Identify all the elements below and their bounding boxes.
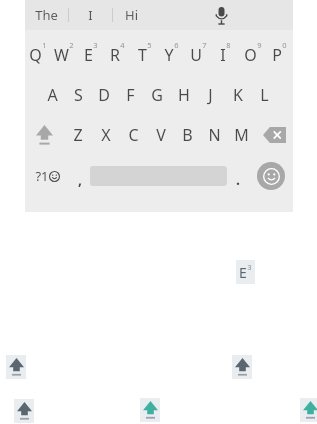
staticText: 9 xyxy=(257,40,262,50)
staticText: T xyxy=(138,44,147,66)
staticText: S xyxy=(74,84,83,106)
staticText: Q xyxy=(29,44,42,66)
staticText: B xyxy=(182,124,193,146)
staticText: Hi xyxy=(125,6,138,24)
button[interactable]: Shift xyxy=(300,398,317,422)
staticText: F xyxy=(126,84,135,106)
staticText: , xyxy=(78,170,82,189)
staticText: C xyxy=(128,124,139,146)
button[interactable]: Q xyxy=(25,36,51,74)
button[interactable]: Shift xyxy=(14,399,34,423)
button[interactable]: L xyxy=(251,76,278,114)
button[interactable]: S xyxy=(65,76,91,114)
staticText: 3 xyxy=(93,40,98,50)
button[interactable]: U xyxy=(185,36,212,74)
button[interactable]: ?1 xyxy=(25,156,69,196)
staticText: The xyxy=(35,6,58,24)
staticText: E xyxy=(239,263,247,282)
button[interactable]: Shift xyxy=(6,355,26,379)
button[interactable]: O xyxy=(239,36,266,74)
staticText: M xyxy=(234,124,249,146)
button[interactable]: Y xyxy=(158,36,185,74)
staticText: 7 xyxy=(202,40,207,50)
staticText: R xyxy=(110,44,120,66)
button[interactable]: The xyxy=(25,0,68,30)
button[interactable]: C xyxy=(120,116,147,154)
button[interactable]: R xyxy=(104,36,131,74)
button[interactable]: D xyxy=(91,76,117,114)
staticText: E xyxy=(84,44,93,66)
staticText: G xyxy=(151,84,163,106)
button[interactable]: Shift xyxy=(25,116,64,154)
button[interactable]: E xyxy=(236,260,255,284)
staticText: 6 xyxy=(174,40,179,50)
button[interactable]: Voice input xyxy=(150,0,293,30)
button[interactable]: F xyxy=(117,76,143,114)
staticText: J xyxy=(208,84,213,106)
button[interactable]: E xyxy=(77,36,104,74)
staticText: D xyxy=(98,84,110,106)
button[interactable]: . xyxy=(227,156,248,196)
staticText: 4 xyxy=(120,40,125,50)
staticText: A xyxy=(47,84,58,106)
button[interactable]: M xyxy=(228,116,255,154)
staticText: Z xyxy=(73,124,83,146)
button[interactable]: I xyxy=(212,36,239,74)
staticText: ?1 xyxy=(35,167,49,185)
staticText: 0 xyxy=(282,40,287,50)
button[interactable]: X xyxy=(92,116,120,154)
button[interactable]: Shift xyxy=(232,355,252,379)
staticText: K xyxy=(233,84,243,106)
button[interactable]: Backspace xyxy=(255,116,293,154)
button[interactable]: H xyxy=(170,76,197,114)
button[interactable]: Emoji xyxy=(257,162,285,190)
staticText: U xyxy=(190,44,202,66)
button[interactable]: Z xyxy=(64,116,92,154)
staticText: I xyxy=(220,44,226,66)
staticText: 5 xyxy=(147,40,152,50)
button[interactable]: I xyxy=(69,0,112,30)
staticText: L xyxy=(260,84,269,106)
staticText: N xyxy=(208,124,221,146)
staticText: X xyxy=(101,124,111,146)
button[interactable]: Shift xyxy=(140,398,160,422)
staticText: . xyxy=(236,170,240,189)
button[interactable]: T xyxy=(131,36,158,74)
staticText: 3 xyxy=(247,263,252,273)
staticText: V xyxy=(156,124,166,146)
staticText: Y xyxy=(164,44,174,66)
button[interactable]: N xyxy=(201,116,228,154)
staticText: P xyxy=(272,44,282,66)
staticText: 2 xyxy=(69,40,74,50)
button[interactable]: A xyxy=(39,76,65,114)
staticText: H xyxy=(178,84,190,106)
button[interactable]: K xyxy=(224,76,251,114)
button[interactable]: B xyxy=(174,116,201,154)
button[interactable]: V xyxy=(147,116,174,154)
button[interactable]: P xyxy=(266,36,293,74)
button[interactable]: Hi xyxy=(113,0,150,30)
staticText: 1 xyxy=(42,40,47,50)
button[interactable]: W xyxy=(51,36,77,74)
staticText: 8 xyxy=(226,40,231,50)
button[interactable]: J xyxy=(197,76,224,114)
staticText: O xyxy=(244,44,257,66)
staticText: I xyxy=(88,6,93,24)
button[interactable]: , xyxy=(69,156,90,196)
staticText: W xyxy=(54,44,69,66)
button[interactable]: G xyxy=(143,76,170,114)
